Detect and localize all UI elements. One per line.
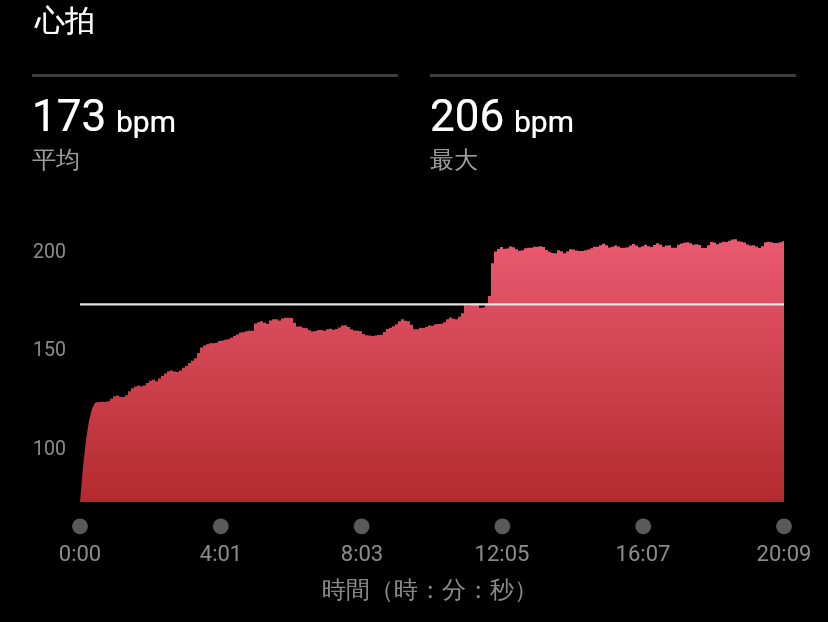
staticText: 173 <box>32 90 107 142</box>
staticText: 200 <box>33 240 66 263</box>
staticText: 8:03 <box>312 541 412 567</box>
staticText: 100 <box>33 437 66 460</box>
staticText: 最大 <box>430 145 478 175</box>
staticText: bpm <box>514 104 574 139</box>
staticText: bpm <box>116 104 176 139</box>
staticText: 12:05 <box>452 541 552 567</box>
staticText: 0:00 <box>30 541 130 567</box>
other: 心拍数グラフ <box>0 0 828 622</box>
button[interactable]: 173 <box>32 74 398 175</box>
staticText: 心拍 <box>35 2 95 40</box>
staticText: 4:01 <box>171 541 271 567</box>
staticText: 150 <box>33 338 66 361</box>
staticText: 20:09 <box>734 541 828 567</box>
staticText: 16:07 <box>593 541 693 567</box>
staticText: 時間（時：分：秒） <box>322 575 538 605</box>
staticText: 平均 <box>32 145 80 175</box>
staticText: 206 <box>430 90 505 142</box>
button[interactable]: 206 <box>430 74 796 175</box>
